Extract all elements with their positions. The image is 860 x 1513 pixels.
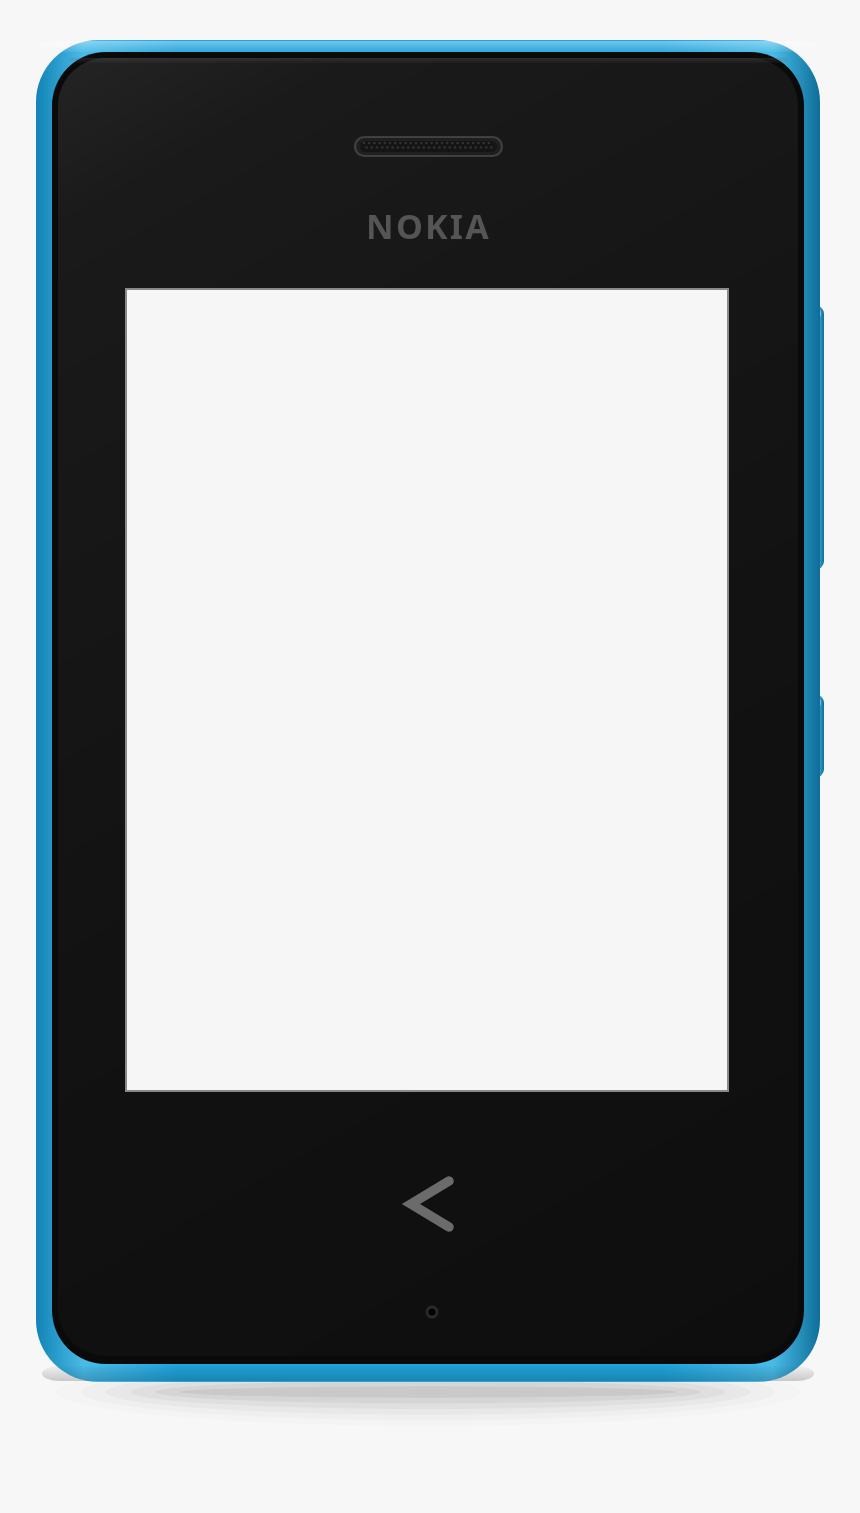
- button[interactable]: Back: [390, 1164, 470, 1244]
- button[interactable]: Power: [796, 694, 824, 778]
- button[interactable]: Volume: [796, 305, 824, 570]
- staticText: NOKIA: [366, 203, 491, 241]
